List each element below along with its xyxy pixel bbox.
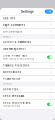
button[interactable]: Autofill & Passwords [0, 39, 55, 45]
staticText: › [50, 23, 52, 27]
staticText: › [50, 63, 52, 68]
staticText: When Leaving Private Browsing [3, 58, 34, 60]
button[interactable]: Notifications [0, 69, 55, 75]
staticText: Done [46, 10, 51, 13]
button[interactable]: Page Summaries [0, 22, 55, 28]
button[interactable]: Data Management [0, 46, 55, 52]
button[interactable]: Show Tips [0, 86, 55, 92]
button[interactable]: Send Technical and [0, 99, 55, 109]
staticText: Interaction Data [3, 105, 20, 107]
staticText: PRIVACY [3, 36, 11, 38]
staticText: Close Private Tabs [3, 54, 27, 57]
staticText: Send Feedback [3, 94, 24, 97]
button[interactable]: Siri Shortcuts [0, 28, 55, 35]
staticText: › [50, 87, 52, 92]
staticText: › [50, 93, 52, 98]
button[interactable]: Close Private Tabs [0, 52, 55, 62]
button[interactable]: Tracking Protection [0, 62, 55, 69]
staticText: Page Summaries [3, 23, 25, 26]
staticText: › [50, 70, 52, 74]
staticText: Privacy Notice [3, 77, 21, 80]
staticText: › [50, 40, 52, 44]
staticText: Data Management [3, 47, 26, 50]
staticText: App Icon [3, 17, 16, 20]
button[interactable]: Done [45, 10, 53, 14]
staticText: Send Technical and [3, 101, 31, 104]
button[interactable]: Privacy Notice [0, 76, 55, 82]
staticText: › [50, 76, 52, 81]
staticText: SUPPORT [3, 83, 12, 85]
staticText: Show Tips [3, 88, 18, 91]
staticText: › [50, 46, 52, 51]
button[interactable]: Send Feedback [0, 93, 55, 99]
staticText: › [50, 29, 52, 34]
staticText: Siri Shortcuts [3, 30, 22, 33]
staticText: Notifications [3, 71, 21, 74]
staticText: Settings [21, 10, 34, 13]
staticText: › [50, 16, 52, 21]
staticText: Autofill & Passwords [3, 41, 31, 44]
button[interactable]: App Icon [0, 15, 55, 21]
staticText: Tracking Protection [3, 64, 30, 67]
